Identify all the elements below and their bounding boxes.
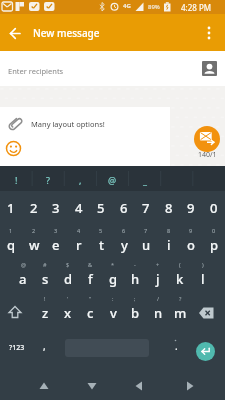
button[interactable]: 4 (68, 193, 90, 223)
button[interactable]: r (68, 234, 90, 256)
button[interactable]: h (124, 268, 146, 290)
staticText: o (187, 236, 195, 254)
staticText: ) (202, 261, 204, 268)
staticText: 6 (122, 227, 126, 234)
button[interactable]: ?123 (2, 338, 32, 358)
staticText: b (131, 304, 140, 322)
staticText: 3 (52, 199, 60, 217)
button[interactable]: @ (97, 169, 127, 191)
button[interactable]: 5 (90, 193, 112, 223)
staticText: g (109, 270, 118, 288)
button[interactable]: . (166, 336, 186, 356)
staticText: / (157, 295, 160, 302)
button[interactable]: d (57, 268, 79, 290)
button[interactable] (195, 302, 219, 326)
button[interactable]: i (158, 234, 180, 256)
staticText: c (87, 304, 94, 322)
button[interactable]: ? (33, 169, 63, 191)
staticText: x (64, 304, 72, 322)
button[interactable]: y (113, 234, 135, 256)
button[interactable]: k (169, 268, 191, 290)
button[interactable]: p (203, 234, 225, 256)
button[interactable]: o (180, 234, 202, 256)
button[interactable]: n (147, 302, 169, 324)
button[interactable]: b (124, 302, 146, 324)
staticText: 2 (30, 199, 38, 217)
button[interactable]: c (79, 302, 101, 324)
button[interactable] (124, 370, 152, 398)
button[interactable]: j (147, 268, 169, 290)
staticText: 4 (77, 227, 81, 234)
button[interactable]: 1 (0, 193, 22, 223)
staticText: ?123 (9, 343, 25, 353)
button[interactable] (4, 302, 28, 326)
staticText: 5 (97, 199, 105, 217)
staticText: ( (179, 261, 181, 268)
button[interactable] (4, 114, 25, 135)
staticText: 7 (142, 199, 150, 217)
button[interactable] (202, 61, 217, 76)
staticText: ! (15, 174, 18, 186)
button[interactable]: 6 (113, 193, 135, 223)
button[interactable]: u (135, 234, 157, 256)
button[interactable] (77, 370, 105, 398)
button[interactable] (0, 107, 170, 166)
button[interactable] (197, 20, 221, 46)
staticText: ; (134, 295, 136, 302)
button[interactable] (196, 342, 215, 361)
staticText: 1 (9, 227, 13, 234)
staticText: 0 (210, 199, 218, 217)
staticText: q (7, 236, 16, 254)
button[interactable]: a (12, 268, 34, 290)
staticText: 8 (167, 227, 171, 234)
staticText: 4G (123, 2, 131, 10)
staticText: n (154, 304, 163, 322)
button[interactable]: e (45, 234, 67, 256)
button[interactable]: x (57, 302, 79, 324)
staticText: New message (33, 26, 100, 40)
button[interactable] (171, 370, 199, 398)
staticText: s (42, 270, 49, 288)
staticText: z (42, 304, 49, 322)
button[interactable]: _ (130, 169, 160, 191)
button[interactable] (30, 370, 58, 398)
button[interactable] (194, 126, 220, 152)
button[interactable]: , (65, 169, 95, 191)
staticText: 4:28 PM (181, 2, 212, 13)
staticText: 89% (148, 3, 160, 11)
staticText: u (142, 236, 151, 254)
staticText: a (19, 270, 27, 288)
button[interactable]: s (34, 268, 56, 290)
button[interactable]: g (102, 268, 124, 290)
button[interactable]: m (169, 302, 191, 324)
button[interactable] (5, 140, 22, 157)
staticText: 9 (187, 199, 195, 217)
staticText: , (43, 339, 46, 353)
staticText: m (174, 304, 187, 322)
button[interactable]: w (23, 234, 45, 256)
staticText: t (99, 236, 104, 254)
button[interactable]: 2 (23, 193, 45, 223)
button[interactable]: , (34, 336, 54, 356)
button[interactable]: 8 (158, 193, 180, 223)
staticText: @ (108, 174, 117, 186)
button[interactable]: ! (1, 169, 31, 191)
staticText: _ (143, 174, 147, 186)
staticText: + (156, 261, 160, 268)
staticText: $ (66, 261, 70, 268)
button[interactable]: 9 (180, 193, 202, 223)
button[interactable]: f (79, 268, 101, 290)
button[interactable] (2, 20, 28, 46)
button[interactable]: 3 (45, 193, 67, 223)
button[interactable]: l (192, 268, 214, 290)
button[interactable]: 7 (135, 193, 157, 223)
staticText: 0 (212, 227, 216, 234)
button[interactable]: 0 (203, 193, 225, 223)
button[interactable]: v (102, 302, 124, 324)
button[interactable]: q (0, 234, 22, 256)
staticText: r (76, 236, 82, 254)
button[interactable]: z (34, 302, 56, 324)
button[interactable]: t (90, 234, 112, 256)
button[interactable]: Enter recipients (0, 51, 225, 86)
